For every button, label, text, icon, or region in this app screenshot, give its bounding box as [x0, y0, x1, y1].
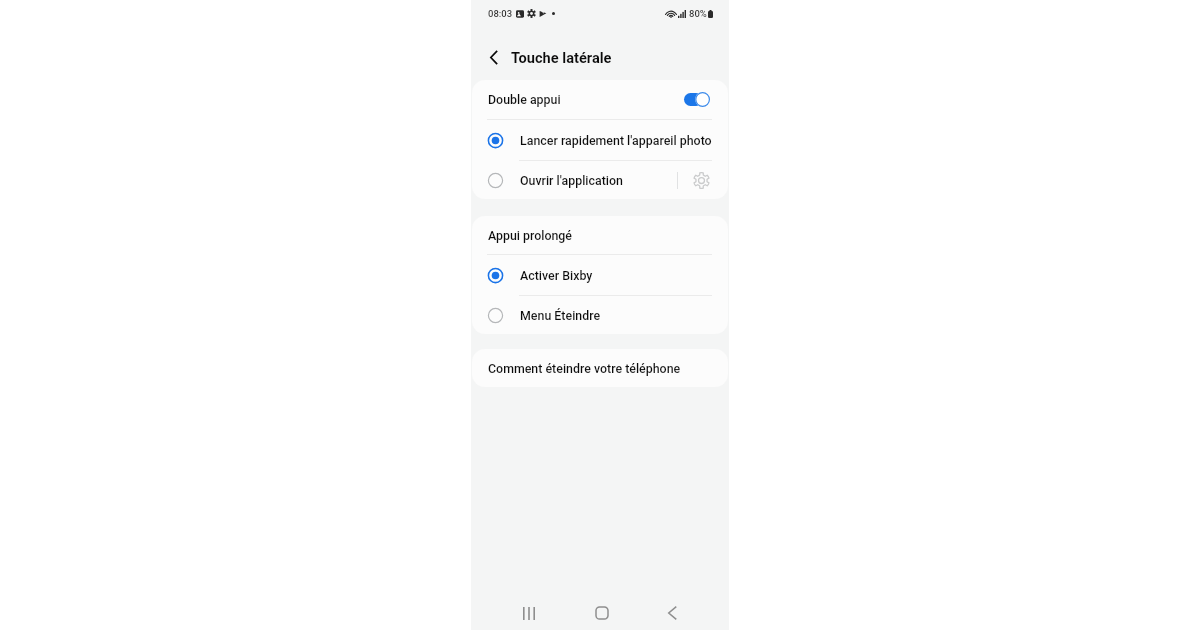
staticText: 80%: [689, 8, 707, 19]
staticText: Double appui: [488, 92, 561, 107]
button[interactable]: Comment éteindre votre téléphone: [472, 349, 728, 387]
button[interactable]: Menu Éteindre: [472, 296, 728, 334]
button[interactable]: Lancer rapidement l'appareil photo: [472, 120, 728, 160]
button[interactable]: Settings: [690, 169, 712, 191]
button[interactable]: Double appui toggle: [684, 91, 710, 108]
staticText: Touche latérale: [511, 49, 612, 66]
staticText: Lancer rapidement l'appareil photo: [520, 133, 712, 148]
staticText: 08:03: [488, 8, 513, 19]
button[interactable]: Activer Bixby: [472, 255, 728, 295]
button[interactable]: Back: [478, 41, 510, 73]
button[interactable]: Ouvrir l'application: [472, 161, 728, 199]
staticText: Ouvrir l'application: [520, 173, 623, 188]
staticText: Activer Bixby: [520, 268, 593, 283]
button[interactable]: Recent apps: [514, 598, 544, 628]
staticText: Appui prolongé: [488, 228, 573, 243]
button[interactable]: Home: [587, 598, 617, 628]
staticText: Menu Éteindre: [520, 308, 601, 323]
button[interactable]: Double appui: [472, 80, 728, 119]
button[interactable]: Back: [657, 598, 687, 628]
staticText: Comment éteindre votre téléphone: [488, 361, 681, 376]
